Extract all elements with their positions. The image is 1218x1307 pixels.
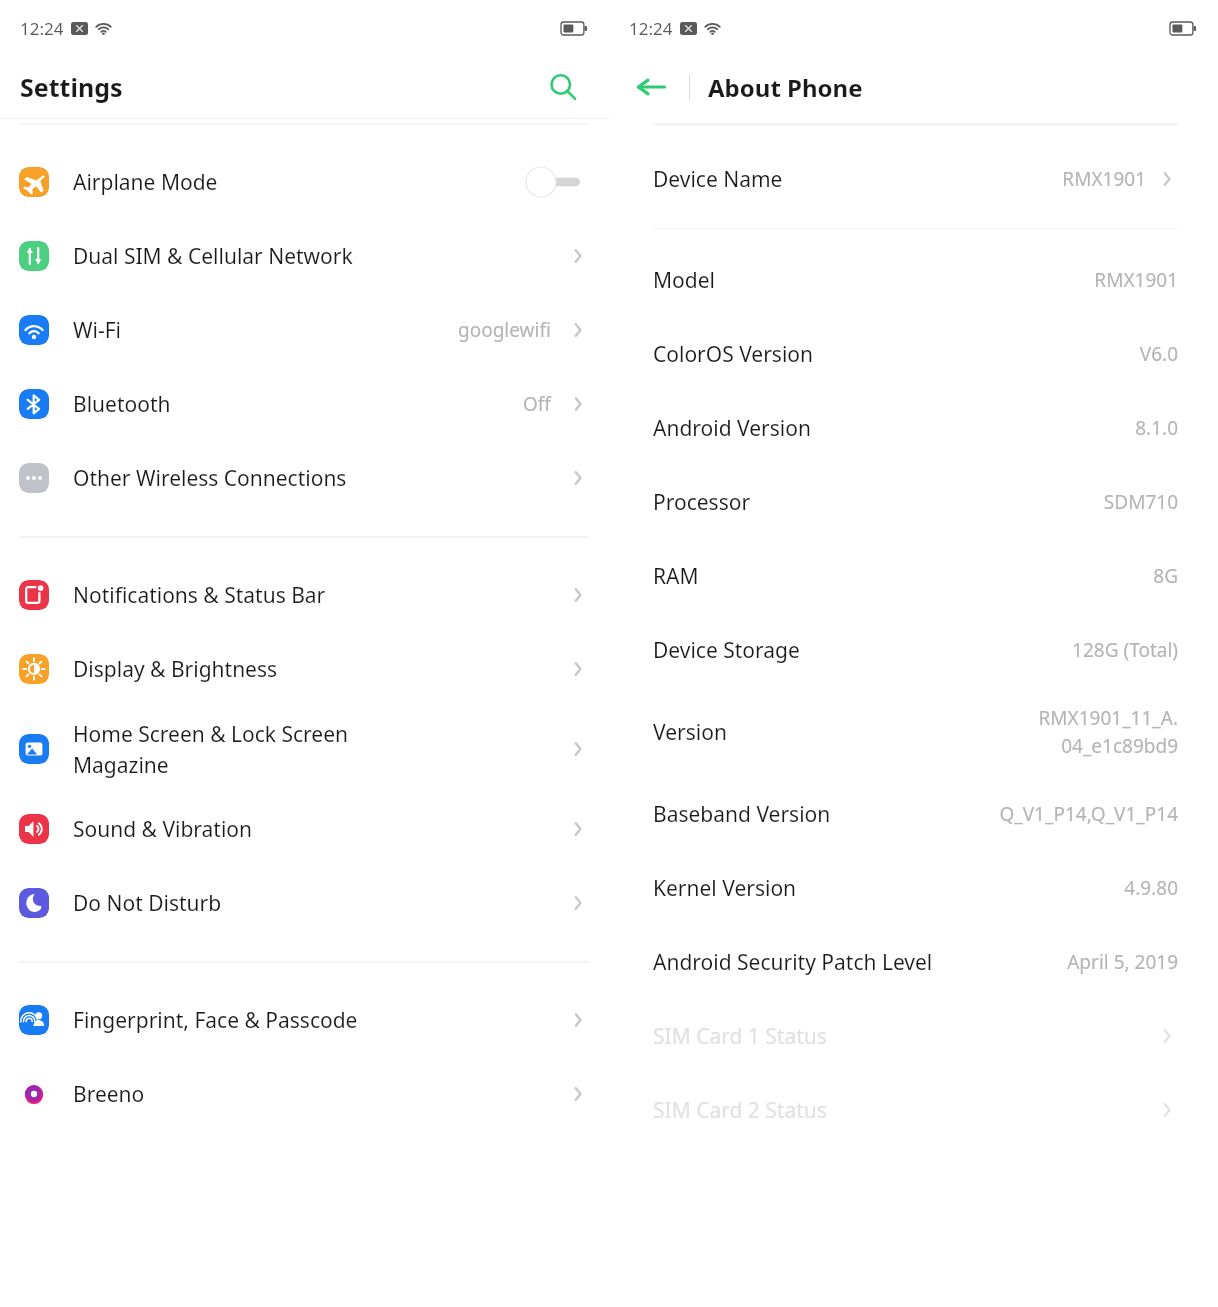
button[interactable]: Bluetooth	[0, 367, 609, 441]
staticText: Home Screen & Lock Screen Magazine	[73, 720, 567, 779]
staticText: ColorOS Version	[653, 340, 814, 369]
staticText: Settings	[20, 70, 123, 104]
staticText: Q_V1_P14,Q_V1_P14	[999, 801, 1178, 827]
staticText: April 5, 2019	[1067, 949, 1178, 975]
button[interactable]: ColorOS Version	[609, 317, 1218, 391]
staticText: SIM Card 2 Status	[653, 1096, 827, 1125]
button[interactable]: Dual SIM & Cellular Network	[0, 219, 609, 293]
staticText: Sound & Vibration	[73, 815, 567, 844]
staticText: Off	[523, 391, 551, 417]
staticText: Airplane Mode	[73, 168, 525, 197]
staticText: RMX1901	[1094, 267, 1178, 293]
staticText: Fingerprint, Face & Passcode	[73, 1006, 567, 1035]
button[interactable]: Do Not Disturb	[0, 866, 609, 940]
staticText: About Phone	[708, 71, 863, 104]
staticText: 128G (Total)	[1072, 637, 1178, 663]
staticText: SDM710	[1103, 489, 1178, 515]
button[interactable]: Android Security Patch Level	[609, 925, 1218, 999]
staticText: Kernel Version	[653, 874, 797, 903]
staticText: Device Storage	[653, 636, 800, 665]
button[interactable]: Wi-Fi	[0, 293, 609, 367]
staticText: Device Name	[653, 165, 783, 194]
button[interactable]: Display & Brightness	[0, 632, 609, 706]
staticText: Dual SIM & Cellular Network	[73, 242, 567, 271]
button[interactable]: Device Name	[609, 142, 1218, 216]
staticText: Notifications & Status Bar	[73, 581, 567, 610]
staticText: 4.9.80	[1124, 875, 1178, 901]
staticText: SIM Card 1 Status	[653, 1022, 827, 1051]
button[interactable]: Kernel Version	[609, 851, 1218, 925]
staticText: RAM	[653, 562, 699, 591]
button[interactable]: Sound & Vibration	[0, 792, 609, 866]
button[interactable]: Processor	[609, 465, 1218, 539]
staticText: RMX1901_11_A. 04_e1c89bd9	[1038, 705, 1178, 759]
staticText: Breeno	[73, 1080, 567, 1109]
staticText: Baseband Version	[653, 800, 831, 829]
staticText: Android Security Patch Level	[653, 948, 933, 977]
staticText: Wi-Fi	[73, 316, 458, 345]
staticText: Do Not Disturb	[73, 889, 567, 918]
staticText: googlewifi	[458, 317, 551, 343]
staticText: V6.0	[1139, 341, 1178, 367]
staticText: 8.1.0	[1135, 415, 1178, 441]
button[interactable]: Android Version	[609, 391, 1218, 465]
staticText: Processor	[653, 488, 751, 517]
staticText: Other Wireless Connections	[73, 464, 567, 493]
button[interactable]: Search	[541, 65, 585, 109]
staticText: 12:24	[629, 17, 673, 40]
button[interactable]: Version	[609, 687, 1218, 777]
button[interactable]: Baseband Version	[609, 777, 1218, 851]
staticText: Android Version	[653, 414, 811, 443]
button[interactable]: Back	[629, 65, 673, 109]
button[interactable]: Home Screen & Lock Screen Magazine	[0, 706, 609, 792]
staticText: Model	[653, 266, 715, 295]
staticText: Display & Brightness	[73, 655, 567, 684]
button[interactable]: SIM Card 1 Status	[609, 999, 1218, 1073]
button[interactable]: Other Wireless Connections	[0, 441, 609, 515]
staticText: Version	[653, 718, 727, 747]
button[interactable]: Device Storage	[609, 613, 1218, 687]
button[interactable]: SIM Card 2 Status	[609, 1073, 1218, 1147]
staticText: RMX1901	[1062, 166, 1146, 192]
staticText: 8G	[1153, 563, 1178, 589]
button[interactable]: Breeno	[0, 1057, 609, 1131]
button[interactable]: Model	[609, 243, 1218, 317]
button[interactable]: Notifications & Status Bar	[0, 558, 609, 632]
button[interactable]: Fingerprint, Face & Passcode	[0, 983, 609, 1057]
button[interactable]: RAM	[609, 539, 1218, 613]
staticText: Bluetooth	[73, 390, 523, 419]
staticText: 12:24	[20, 17, 64, 40]
button[interactable]: Airplane Mode	[0, 145, 609, 219]
